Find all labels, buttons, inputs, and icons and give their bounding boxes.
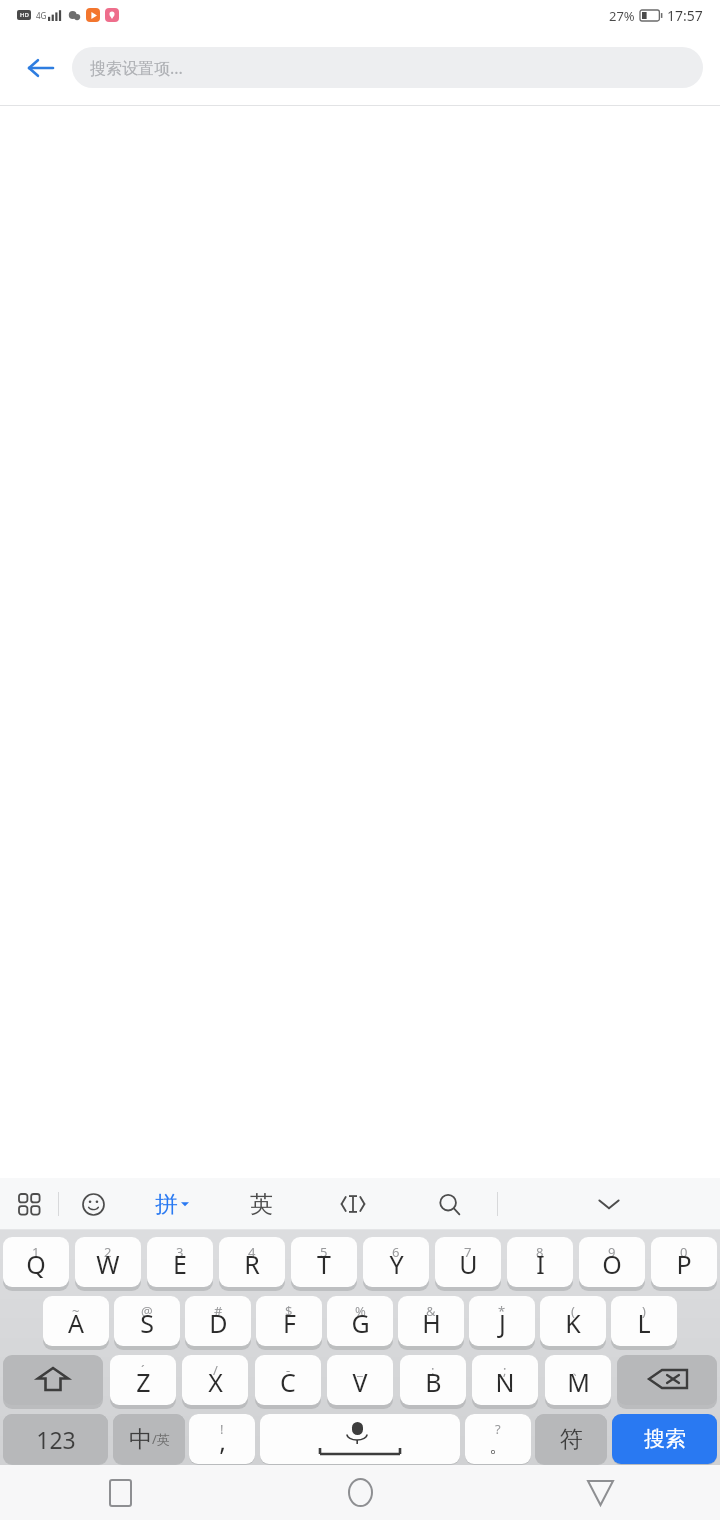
staticText: - — [286, 1361, 291, 1379]
button[interactable]: 。 — [465, 1414, 531, 1465]
button[interactable]: Move cursor — [305, 1178, 401, 1230]
staticText: K — [565, 1306, 581, 1340]
staticText: _ — [357, 1361, 363, 1379]
staticText: 4G — [36, 10, 47, 21]
staticText: W — [96, 1247, 120, 1281]
staticText: Q — [26, 1247, 46, 1281]
button[interactable]: M — [545, 1355, 611, 1409]
button[interactable]: 搜索设置项... — [72, 47, 703, 88]
button[interactable]: U — [435, 1237, 501, 1291]
button[interactable]: 英 — [217, 1178, 305, 1230]
staticText: 17:57 — [667, 6, 703, 25]
staticText: 5 — [320, 1243, 328, 1261]
staticText: C — [280, 1365, 296, 1399]
staticText: 中 — [129, 1425, 152, 1454]
staticText: , — [219, 1424, 226, 1458]
button[interactable]: F — [256, 1296, 322, 1350]
staticText: ~ — [72, 1302, 80, 1320]
staticText: $ — [285, 1302, 293, 1320]
staticText: 1 — [32, 1243, 40, 1261]
staticText: # — [214, 1302, 223, 1320]
button[interactable]: H — [398, 1296, 464, 1350]
staticText: 2 — [104, 1243, 112, 1261]
staticText: 27% — [609, 7, 635, 25]
button[interactable]: key — [260, 1414, 460, 1465]
button[interactable]: A — [43, 1296, 109, 1350]
staticText: ) — [642, 1302, 646, 1320]
staticText: 搜索 — [644, 1426, 686, 1452]
button[interactable]: X — [182, 1355, 248, 1409]
button[interactable]: T — [291, 1237, 357, 1291]
staticText: V — [352, 1365, 368, 1399]
button[interactable]: N — [472, 1355, 538, 1409]
staticText: 9 — [608, 1243, 616, 1261]
staticText: 7 — [464, 1243, 472, 1261]
staticText: 、 — [572, 1361, 585, 1377]
staticText: J — [499, 1306, 506, 1340]
staticText: N — [495, 1365, 515, 1399]
button[interactable]: G — [327, 1296, 393, 1350]
button[interactable]: Back — [12, 40, 68, 96]
staticText: I — [536, 1247, 545, 1281]
button[interactable]: V — [327, 1355, 393, 1409]
staticText: 搜索设置项... — [90, 57, 183, 79]
button[interactable]: Search — [401, 1178, 497, 1230]
staticText: F — [283, 1306, 296, 1340]
button[interactable]: Home — [240, 1465, 480, 1520]
staticText: 6 — [392, 1243, 400, 1261]
staticText: G — [351, 1306, 370, 1340]
button[interactable]: 中英 — [113, 1414, 185, 1465]
staticText: : — [431, 1361, 435, 1379]
staticText: 3 — [176, 1243, 184, 1261]
button[interactable]: key — [617, 1355, 717, 1409]
staticText: X — [208, 1365, 223, 1399]
button[interactable]: C — [255, 1355, 321, 1409]
button[interactable]: Back — [480, 1465, 720, 1520]
staticText: 英 — [250, 1190, 273, 1219]
button[interactable]: J — [469, 1296, 535, 1350]
button[interactable]: O — [579, 1237, 645, 1291]
button[interactable]: B — [400, 1355, 466, 1409]
button[interactable]: , — [189, 1414, 255, 1465]
button[interactable]: key — [3, 1355, 103, 1409]
button[interactable]: P — [651, 1237, 717, 1291]
button[interactable]: R — [219, 1237, 285, 1291]
staticText: 123 — [36, 1424, 76, 1455]
button[interactable]: Emoji — [59, 1178, 127, 1230]
button[interactable]: 拼 — [127, 1178, 217, 1230]
staticText: H — [422, 1306, 441, 1340]
staticText: O — [602, 1247, 622, 1281]
staticText: R — [244, 1247, 260, 1281]
staticText: /英 — [152, 1430, 170, 1448]
button[interactable]: K — [540, 1296, 606, 1350]
staticText: 4 — [248, 1243, 256, 1261]
staticText: 。 — [489, 1434, 508, 1458]
staticText: A — [68, 1306, 84, 1340]
button[interactable]: E — [147, 1237, 213, 1291]
button[interactable]: Hide keyboard — [498, 1178, 720, 1230]
button[interactable]: L — [611, 1296, 677, 1350]
staticText: ! — [220, 1420, 224, 1438]
staticText: P — [676, 1247, 692, 1281]
button[interactable]: Keyboard layouts — [0, 1178, 58, 1230]
staticText: Z — [136, 1365, 151, 1399]
button[interactable]: Z — [110, 1355, 176, 1409]
staticText: 0 — [680, 1243, 688, 1261]
staticText: ; — [503, 1361, 507, 1379]
staticText: * — [498, 1302, 506, 1320]
staticText: / — [213, 1361, 218, 1379]
button[interactable]: W — [75, 1237, 141, 1291]
staticText: HD — [20, 11, 29, 19]
button[interactable]: I — [507, 1237, 573, 1291]
button[interactable]: 搜索 — [612, 1414, 717, 1465]
staticText: L — [637, 1306, 651, 1340]
button[interactable]: S — [114, 1296, 180, 1350]
staticText: ´ — [141, 1361, 145, 1379]
button[interactable]: 符 — [535, 1414, 607, 1465]
button[interactable]: D — [185, 1296, 251, 1350]
button[interactable]: Y — [363, 1237, 429, 1291]
button[interactable]: 123 — [3, 1414, 108, 1465]
button[interactable]: Q — [3, 1237, 69, 1291]
staticText: U — [459, 1247, 478, 1281]
button[interactable]: Recents — [0, 1465, 240, 1520]
